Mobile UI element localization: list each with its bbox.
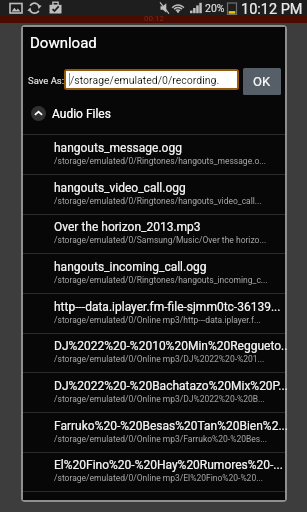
button[interactable]: OK [243,68,281,95]
staticText: /storage/emulated/0/Online mp3/DJ%2022%2… [54,394,265,404]
staticText: /storage/emulated/0/Samsung/Music/Over t… [54,235,267,245]
staticText: hangouts_message.ogg [54,141,182,155]
staticText: El%20Fino%20-%20Hay%20Rumores%20-... [54,458,283,472]
staticText: hangouts_incoming_call.ogg [54,260,207,274]
button[interactable]: hangouts_message.ogg [23,135,285,175]
button[interactable]: DJ%2022%20-%20Bachatazo%20Mix%20P... [23,373,285,413]
staticText: 10:12 PM [241,1,303,16]
staticText: Audio Files [52,107,111,121]
button[interactable]: Farruko%20-%20Besas%20Tan%20Bien%2... [23,413,285,453]
staticText: /storage/emulated/0/Online mp3/Farruko%2… [54,434,267,444]
staticText: Farruko%20-%20Besas%20Tan%20Bien%2... [54,419,287,433]
staticText: http---data.iplayer.fm-file-sjmm0tc-3613… [54,300,281,314]
staticText: Download [30,34,97,52]
staticText: Save As: [28,75,65,86]
staticText: DJ%2022%20-%20Bachatazo%20Mix%20P... [54,379,287,393]
button[interactable]: /storage/emulated/0/recording. [66,71,237,88]
staticText: DJ%2022%20-%2010%20Min%20Reggueto... [54,339,287,353]
staticText: /storage/emulated/0/Online mp3/El%20Fino… [54,473,263,483]
staticText: /storage/emulated/0/Ringtones/hangouts_m… [54,156,266,166]
staticText: 20% [205,2,225,14]
staticText: /storage/emulated/0/Online mp3/DJ%2022%2… [54,354,265,364]
button[interactable]: DJ%2022%20-%2010%20Min%20Reggueto... [23,333,285,373]
button[interactable]: El%20Fino%20-%20Hay%20Rumores%20-... [23,452,285,492]
staticText: /storage/emulated/0/Ringtones/hangouts_i… [54,275,268,285]
button[interactable]: http---data.iplayer.fm-file-sjmm0tc-3613… [23,294,285,334]
staticText: hangouts_video_call.ogg [54,181,186,195]
button[interactable]: Over the horizon_2013.mp3 [23,214,285,254]
staticText: OK [253,74,271,89]
staticText: Over the horizon_2013.mp3 [54,220,201,234]
button[interactable]: Audio Files [23,104,285,123]
staticText: 00:12 [144,14,164,22]
button[interactable]: hangouts_incoming_call.ogg [23,254,285,294]
staticText: /storage/emulated/0/recording. [70,74,220,86]
staticText: /storage/emulated/0/Ringtones/hangouts_v… [54,196,262,206]
button[interactable]: hangouts_video_call.ogg [23,175,285,215]
staticText: /storage/emulated/0/Online mp3/http---da… [54,315,261,325]
